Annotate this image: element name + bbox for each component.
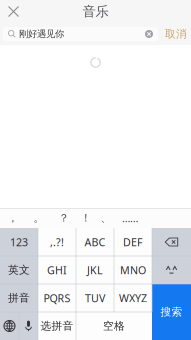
- staticText: 拼音: [8, 291, 30, 304]
- button[interactable]: Dictation: [19, 312, 38, 340]
- button[interactable]: 空格: [76, 312, 152, 340]
- button[interactable]: Close: [0, 0, 27, 23]
- staticText: MNO: [120, 263, 146, 277]
- staticText: 英文: [8, 263, 30, 276]
- button[interactable]: ……: [116, 208, 144, 228]
- button[interactable]: GHI: [38, 256, 76, 284]
- button[interactable]: Emoticons: [152, 256, 191, 284]
- button[interactable]: 123: [0, 228, 38, 256]
- button[interactable]: 英文: [0, 256, 38, 284]
- button[interactable]: DEF: [114, 228, 152, 256]
- button[interactable]: ？: [52, 208, 76, 228]
- staticText: ？: [58, 211, 69, 224]
- button[interactable]: Delete: [152, 228, 191, 256]
- staticText: ！: [80, 211, 91, 224]
- staticText: PQRS: [43, 291, 70, 305]
- staticText: TUV: [85, 291, 105, 305]
- button[interactable]: 选拼音: [38, 312, 76, 340]
- button[interactable]: Switch keyboard: [0, 312, 19, 340]
- staticText: 选拼音: [40, 319, 73, 332]
- staticText: WXYZ: [119, 291, 147, 305]
- staticText: ……: [122, 211, 138, 225]
- staticText: ，: [7, 211, 18, 224]
- staticText: 音乐: [82, 3, 108, 20]
- staticText: JKL: [87, 263, 103, 277]
- button[interactable]: ABC: [76, 228, 114, 256]
- button[interactable]: PQRS: [38, 284, 76, 312]
- staticText: 。: [33, 211, 44, 224]
- staticText: 123: [10, 235, 28, 249]
- staticText: ABC: [84, 235, 105, 249]
- button[interactable]: MNO: [114, 256, 152, 284]
- button[interactable]: TUV: [76, 284, 114, 312]
- button[interactable]: ！: [76, 208, 96, 228]
- button[interactable]: 取消: [162, 26, 190, 42]
- button[interactable]: 拼音: [0, 284, 38, 312]
- button[interactable]: 。: [26, 208, 52, 228]
- button[interactable]: ，: [0, 208, 26, 228]
- staticText: 刚好遇见你: [19, 28, 64, 40]
- button[interactable]: 、: [96, 208, 116, 228]
- button[interactable]: 搜索: [152, 284, 191, 340]
- staticText: 取消: [165, 27, 187, 40]
- staticText: 搜索: [160, 305, 182, 318]
- button[interactable]: Clear text: [143, 27, 155, 41]
- staticText: GHI: [47, 263, 67, 277]
- staticText: ,.?!: [50, 235, 64, 249]
- staticText: 空格: [103, 319, 125, 332]
- button[interactable]: ,.?!: [38, 228, 76, 256]
- button[interactable]: WXYZ: [114, 284, 152, 312]
- staticText: 、: [100, 211, 111, 224]
- staticText: DEF: [123, 235, 143, 249]
- button[interactable]: JKL: [76, 256, 114, 284]
